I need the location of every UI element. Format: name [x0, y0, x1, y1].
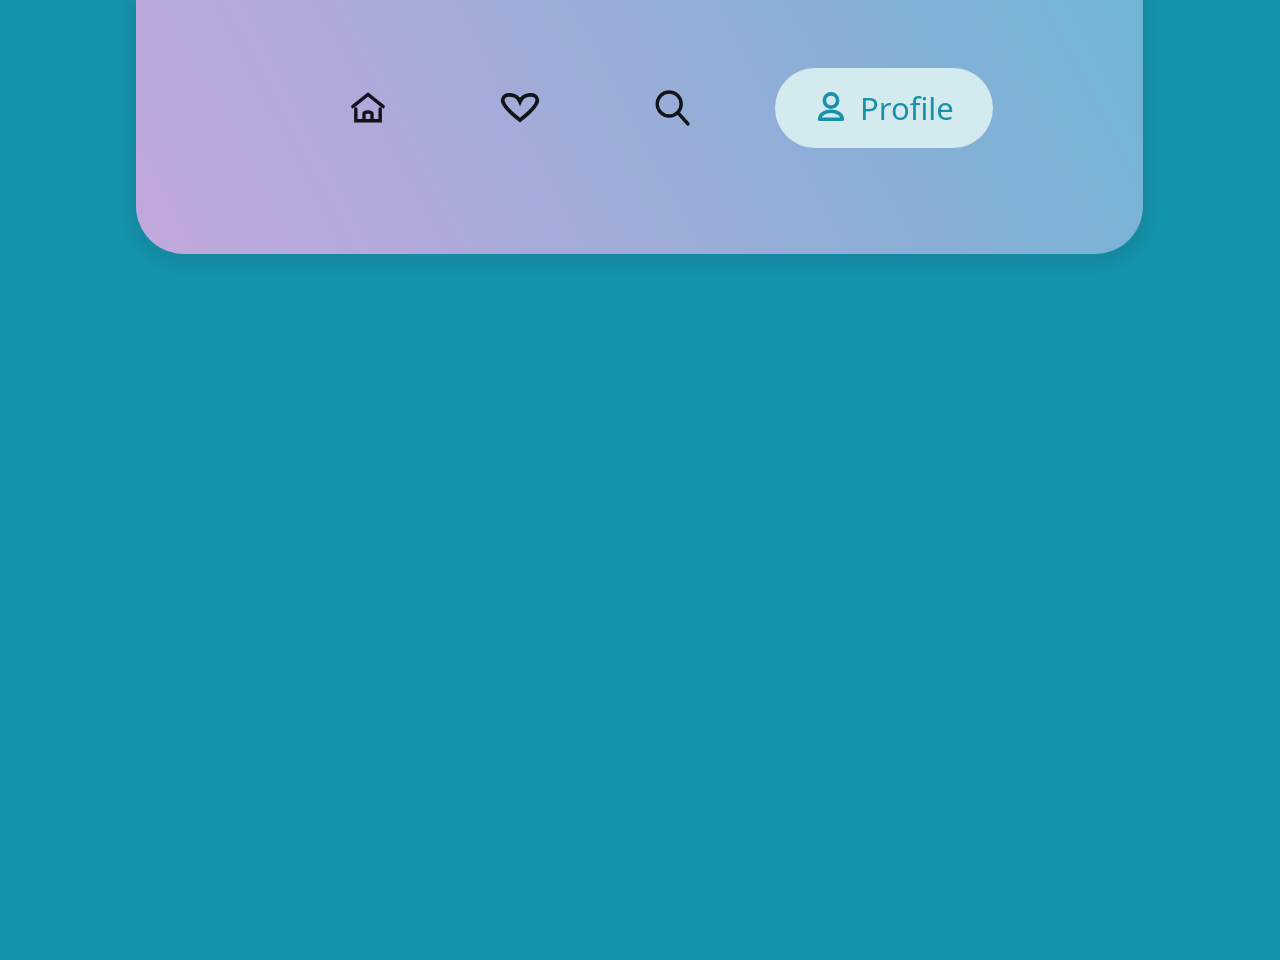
button[interactable]: Profile [775, 68, 993, 148]
button[interactable]: Search [636, 72, 708, 144]
button[interactable]: Favorites [484, 72, 556, 144]
button[interactable]: Home [332, 72, 404, 144]
staticText: Profile [860, 87, 954, 129]
